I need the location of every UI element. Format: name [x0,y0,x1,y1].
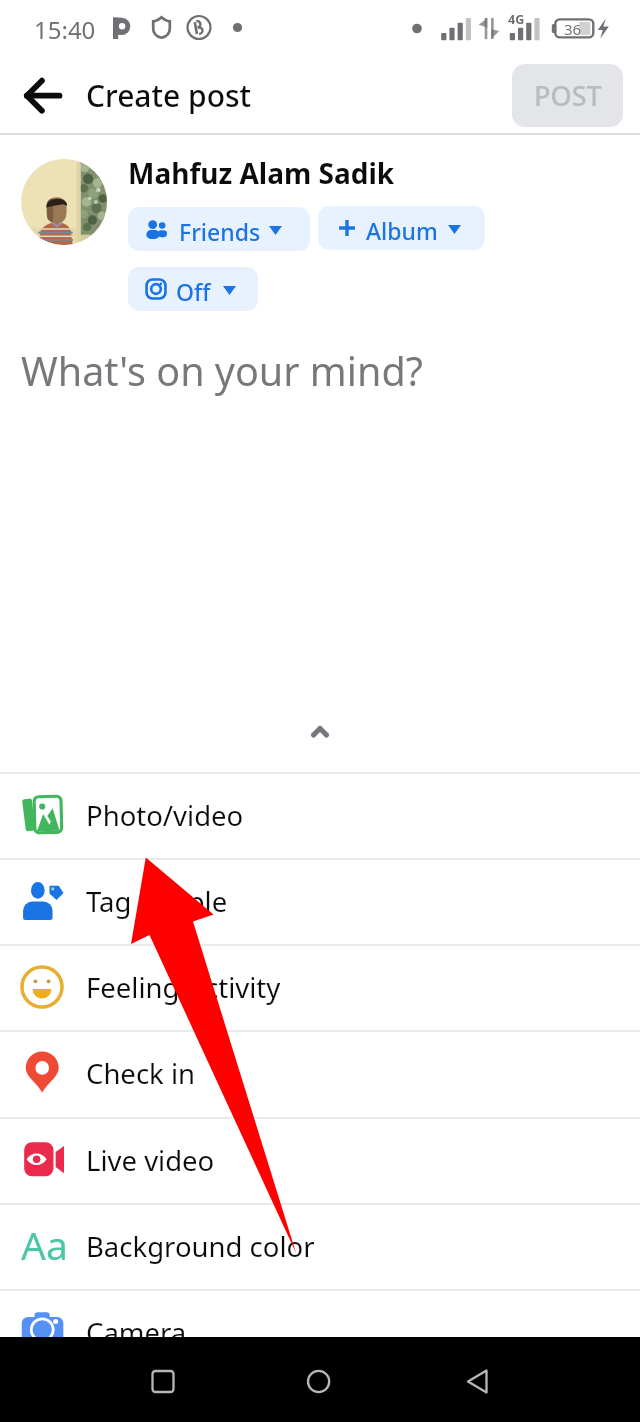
staticText: Camera [86,1314,187,1351]
button[interactable]: Back [14,71,62,119]
button[interactable]: Camera [0,1289,640,1375]
button[interactable]: Home [279,1340,359,1420]
staticText: 15:40 [34,13,96,46]
staticText: Background color [86,1228,315,1265]
staticText: Check in [86,1055,196,1092]
button[interactable]: Off [128,267,258,311]
staticText: Mahfuz Alam Sadik [128,154,395,192]
button[interactable]: Album [318,206,485,250]
staticText: Feeling/activity [86,969,281,1006]
staticText: Live video [86,1142,215,1179]
staticText: Aa [21,1218,65,1262]
button[interactable]: Feeling/activity [0,944,640,1030]
staticText: Tag people [86,883,228,920]
staticText: Off [176,276,211,307]
staticText: Photo/video [86,797,244,834]
button[interactable]: Photo/video [0,772,640,858]
button[interactable]: Recent apps [122,1340,202,1420]
button[interactable]: Friends [128,207,310,251]
button[interactable]: Aa [0,1203,640,1289]
button[interactable]: Check in [0,1030,640,1116]
button[interactable]: Tag people [0,858,640,944]
staticText: Create post [86,75,252,116]
staticText: POST [534,77,602,114]
staticText: 4G [508,11,525,28]
button[interactable]: Back [438,1340,518,1420]
button[interactable]: Live video [0,1117,640,1203]
staticText: Album [366,215,438,246]
staticText: Friends [179,216,261,247]
staticText: What's on your mind? [21,344,423,398]
button[interactable]: POST [512,64,623,127]
button[interactable]: Collapse [288,700,352,764]
staticText: 36 [564,19,582,39]
